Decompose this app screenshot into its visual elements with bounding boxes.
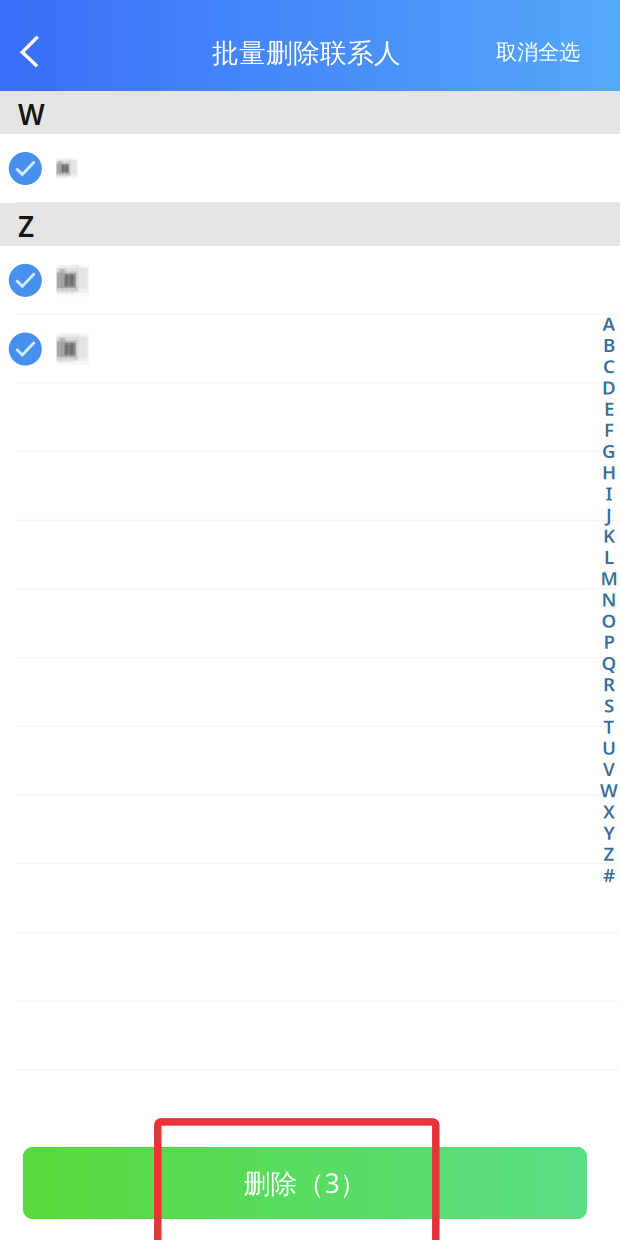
staticText: L [604, 544, 614, 569]
staticText: Z [603, 841, 614, 866]
staticText: R [603, 672, 615, 696]
staticText: F [604, 417, 614, 442]
staticText: X [603, 799, 615, 824]
staticText: A [602, 311, 615, 336]
button[interactable]: 删除（3） [23, 1147, 587, 1219]
staticText: U [602, 735, 616, 760]
button[interactable] [0, 315, 620, 383]
staticText: M [600, 566, 617, 590]
staticText: W [600, 778, 618, 802]
staticText: Y [603, 820, 614, 845]
button[interactable] [0, 134, 620, 203]
staticText: C [603, 354, 615, 378]
staticText: 批量删除联系人 [212, 37, 401, 70]
staticText: O [601, 608, 616, 633]
staticText: V [603, 756, 615, 781]
staticText: I [605, 481, 612, 506]
staticText: D [602, 375, 616, 400]
staticText: T [603, 714, 614, 739]
staticText: G [602, 438, 616, 463]
staticText: 删除（3） [243, 1165, 366, 1201]
staticText: Z [18, 207, 34, 245]
staticText: B [603, 332, 615, 357]
staticText: K [603, 523, 615, 548]
staticText: J [606, 502, 612, 527]
staticText: N [601, 587, 616, 612]
staticText: 取消全选 [496, 39, 580, 65]
button[interactable]: Section index [598, 313, 620, 885]
staticText: H [602, 460, 616, 484]
button[interactable]: 取消全选 [486, 25, 590, 79]
staticText: E [604, 396, 614, 421]
staticText: W [18, 95, 45, 133]
button[interactable]: Back [0, 10, 56, 80]
staticText: # [603, 862, 615, 887]
button[interactable] [0, 246, 620, 315]
staticText: S [604, 693, 614, 718]
staticText: Q [601, 650, 616, 675]
staticText: P [603, 629, 614, 654]
